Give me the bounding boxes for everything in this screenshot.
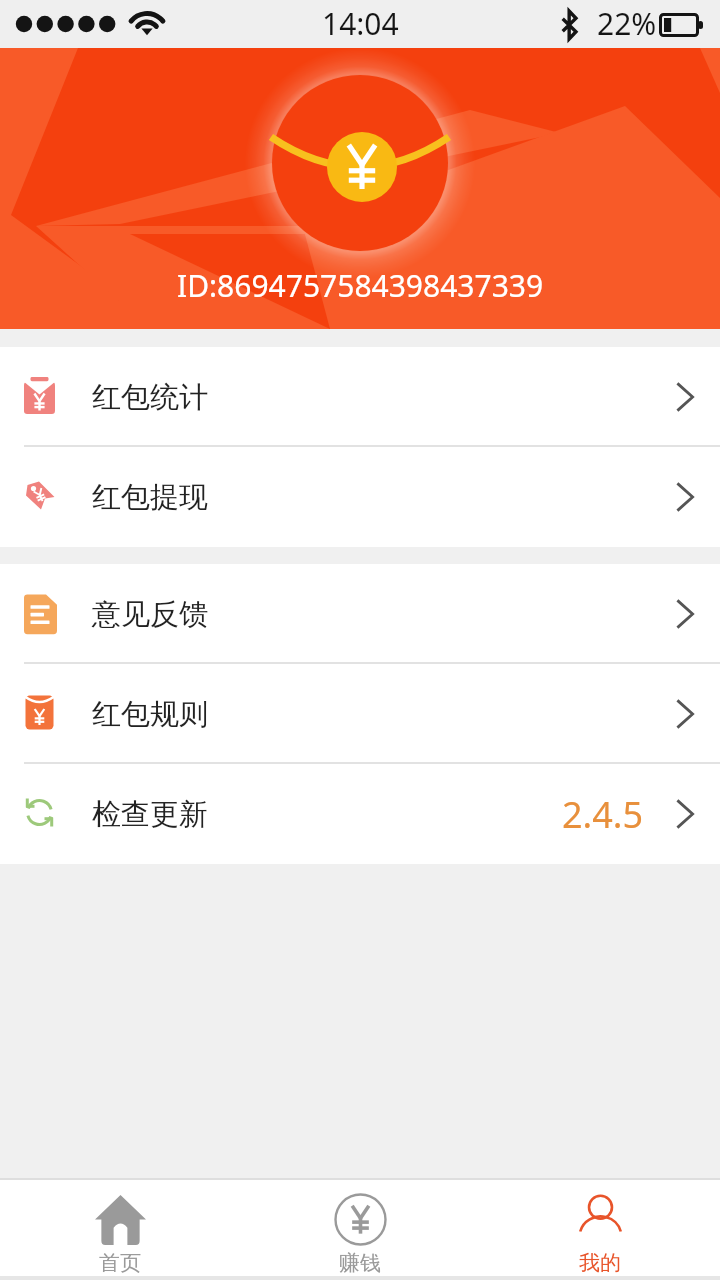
staticText: 22% <box>597 3 657 44</box>
button[interactable]: 意见反馈 <box>0 564 720 664</box>
staticText: 首页 <box>99 1250 141 1276</box>
staticText: 检查更新 <box>92 796 208 833</box>
button[interactable]: 我的 <box>480 1180 720 1276</box>
staticText: 2.4.5 <box>562 790 644 839</box>
button[interactable]: 红包规则 <box>0 664 720 764</box>
button[interactable]: 赚钱 <box>240 1180 480 1276</box>
staticText: 红包规则 <box>92 696 208 733</box>
staticText: 14:04 <box>322 3 399 44</box>
button[interactable]: 红包提现 <box>0 447 720 547</box>
button[interactable]: 检查更新 <box>0 764 720 864</box>
staticText: 赚钱 <box>339 1250 381 1276</box>
staticText: 红包统计 <box>92 379 208 416</box>
staticText: 意见反馈 <box>92 596 208 633</box>
button[interactable]: 红包统计 <box>0 347 720 447</box>
staticText: 我的 <box>579 1250 621 1276</box>
staticText: ID:8694757584398437339 <box>177 265 544 306</box>
staticText: 红包提现 <box>92 479 208 516</box>
button[interactable]: 首页 <box>0 1180 240 1276</box>
